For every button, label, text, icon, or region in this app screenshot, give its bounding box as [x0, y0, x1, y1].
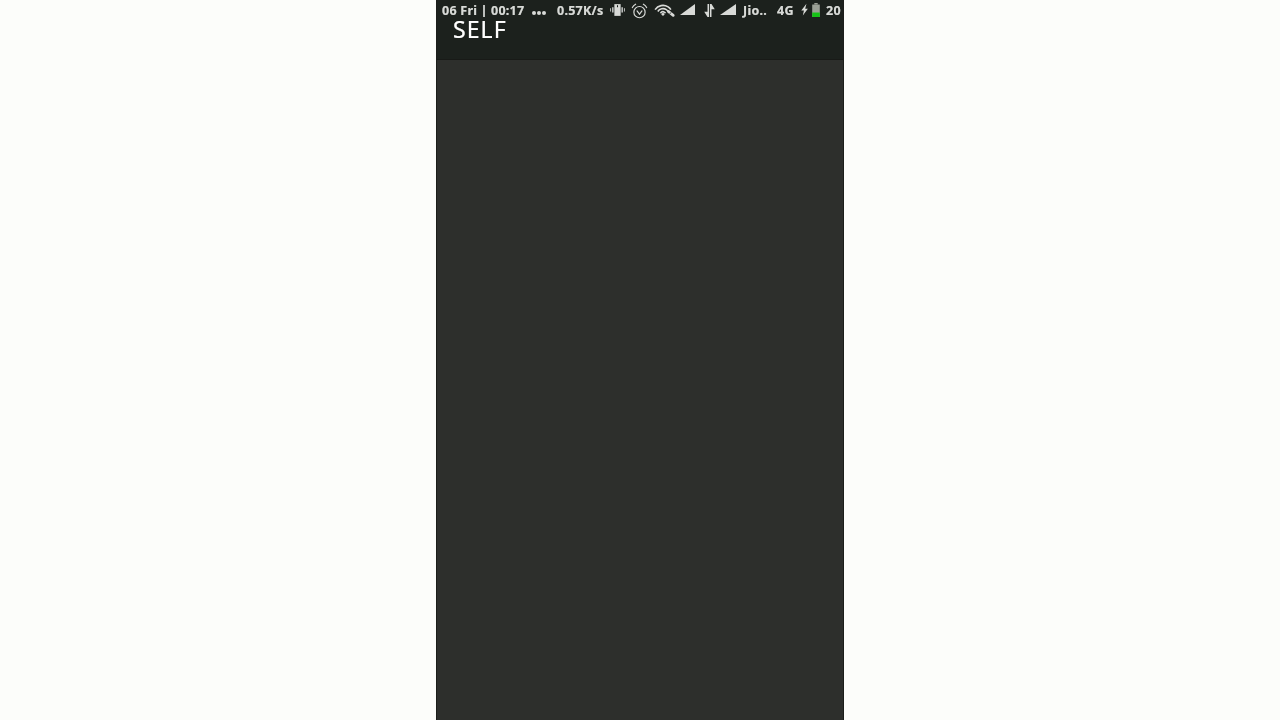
other: More status icons	[532, 11, 546, 15]
other: Data transfer	[704, 4, 715, 17]
other: Battery 20 percent	[811, 3, 821, 17]
staticText: SELF	[453, 13, 507, 44]
other: Charging	[801, 3, 808, 16]
staticText: Jio..	[743, 2, 767, 19]
staticText: 4G	[777, 2, 794, 19]
staticText: 06 Fri	[442, 2, 478, 19]
staticText: 20	[826, 2, 841, 19]
other: Alarm set	[632, 4, 647, 17]
other: Mobile signal SIM 1	[680, 4, 695, 15]
other: Vibrate mode	[610, 4, 625, 16]
other: Wi-Fi connected	[655, 4, 674, 16]
button[interactable]: SELF	[436, 20, 844, 59]
staticText: 00:17	[491, 2, 525, 19]
other: Mobile signal SIM 2	[720, 4, 736, 15]
staticText: 0.57K/s	[557, 2, 604, 19]
